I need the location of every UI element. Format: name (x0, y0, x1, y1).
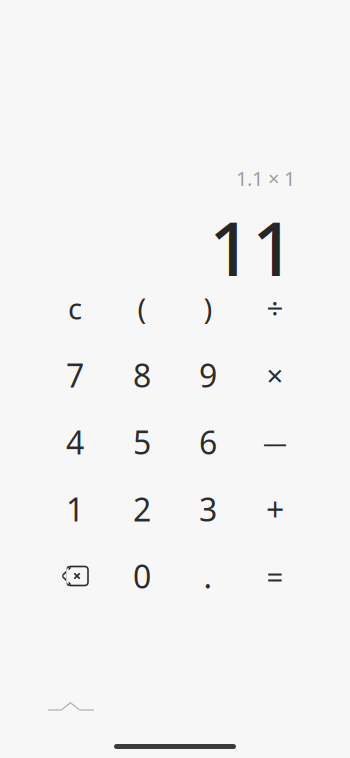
button[interactable]: 2 (111, 478, 173, 540)
staticText: 5 (133, 421, 151, 463)
staticText: 7 (66, 354, 84, 396)
button[interactable]: 8 (111, 344, 173, 406)
button[interactable]: Expand keyboard (48, 692, 108, 720)
button[interactable]: 3 (177, 478, 239, 540)
staticText: ( (137, 288, 146, 327)
staticText: 1.1 × 1 (236, 165, 295, 192)
staticText: 8 (133, 354, 151, 396)
staticText: c (68, 288, 82, 327)
staticText: ÷ (266, 288, 283, 327)
button[interactable]: 1 (44, 478, 106, 540)
button[interactable]: ) (177, 277, 239, 339)
button[interactable]: 4 (44, 411, 106, 473)
staticText: ) (203, 288, 212, 327)
button[interactable]: Delete (44, 545, 106, 607)
button[interactable]: × (244, 344, 306, 406)
staticText: 2 (133, 488, 151, 530)
staticText: 0 (133, 555, 151, 597)
button[interactable]: 0 (111, 545, 173, 607)
button[interactable]: — (244, 411, 306, 473)
button[interactable]: = (244, 545, 306, 607)
button[interactable]: c (44, 277, 106, 339)
button[interactable]: 7 (44, 344, 106, 406)
staticText: — (263, 426, 287, 458)
staticText: . (203, 555, 212, 597)
button[interactable]: 6 (177, 411, 239, 473)
button[interactable]: ÷ (244, 277, 306, 339)
button[interactable]: 9 (177, 344, 239, 406)
staticText: 4 (66, 421, 84, 463)
button[interactable]: ( (111, 277, 173, 339)
staticText: 3 (199, 488, 217, 530)
staticText: = (266, 556, 283, 595)
staticText: 11 (209, 198, 295, 297)
staticText: 6 (199, 421, 217, 463)
staticText: 9 (199, 354, 217, 396)
button[interactable]: 5 (111, 411, 173, 473)
staticText: 1 (66, 488, 84, 530)
button[interactable]: + (244, 478, 306, 540)
button[interactable]: . (177, 545, 239, 607)
staticText: × (266, 355, 283, 394)
staticText: + (266, 488, 284, 530)
